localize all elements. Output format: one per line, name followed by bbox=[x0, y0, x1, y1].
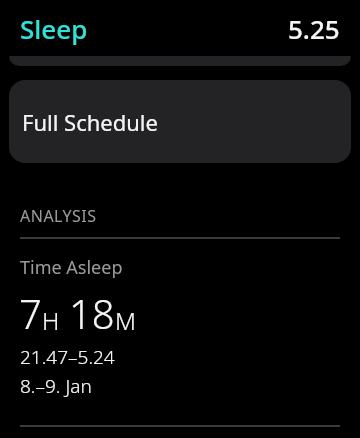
staticText: 8.–9. Jan bbox=[20, 373, 92, 399]
staticText: ANALYSIS bbox=[20, 205, 97, 227]
staticText: Time Asleep bbox=[20, 255, 123, 280]
staticText: 18 bbox=[69, 286, 115, 340]
staticText: 7 bbox=[19, 286, 42, 340]
staticText: Sleep bbox=[20, 11, 88, 46]
staticText: Full Schedule bbox=[22, 107, 158, 137]
button[interactable]: Full Schedule bbox=[9, 80, 351, 163]
staticText: H bbox=[42, 304, 60, 337]
staticText: M bbox=[115, 304, 136, 337]
button[interactable] bbox=[9, 56, 351, 66]
staticText: 21.47–5.24 bbox=[20, 344, 115, 370]
staticText: 5.25 bbox=[288, 11, 340, 46]
